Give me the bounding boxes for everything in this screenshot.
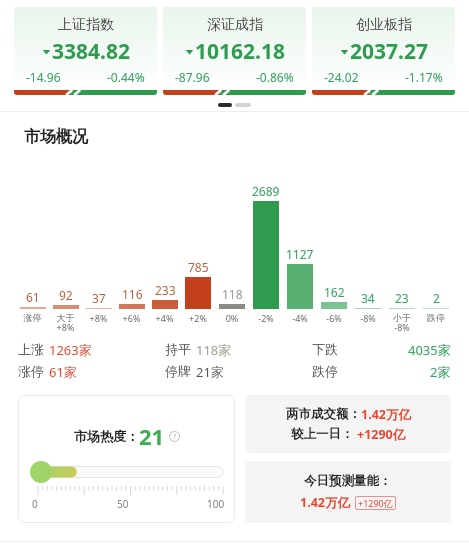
staticText: 21: [139, 421, 165, 451]
staticText: 停牌: [165, 363, 191, 379]
staticText: 2: [433, 290, 440, 306]
staticText: -87.96: [175, 69, 210, 85]
staticText: 1127: [286, 246, 314, 262]
staticText: 118家: [196, 341, 232, 359]
staticText: 市场热度：: [74, 428, 139, 444]
staticText: 2家: [430, 363, 451, 381]
staticText: 下跌: [312, 341, 338, 357]
staticText: 23: [395, 290, 409, 306]
button[interactable]: 深证成指: [163, 7, 306, 95]
staticText: -14.96: [26, 69, 61, 85]
staticText: 50: [117, 497, 129, 511]
staticText: -1.17%: [405, 69, 443, 85]
staticText: ?: [173, 432, 177, 442]
staticText: 1.42万亿: [300, 494, 350, 511]
staticText: 2037.27: [350, 37, 428, 66]
staticText: 涨停: [18, 363, 44, 379]
staticText: 大于 +8%: [49, 312, 82, 333]
staticText: -0.44%: [107, 69, 145, 85]
button[interactable]: 市场热度：: [18, 395, 235, 523]
staticText: +8%: [82, 312, 115, 324]
staticText: 61: [26, 289, 40, 305]
staticText: 上证指数: [58, 16, 114, 34]
staticText: 3384.82: [52, 37, 130, 66]
staticText: 涨停: [16, 312, 49, 323]
button[interactable]: 上证指数: [14, 7, 157, 95]
staticText: -2%: [249, 312, 283, 324]
button[interactable]: 帮助: [169, 431, 180, 442]
button[interactable]: 两市成交额：: [245, 395, 451, 453]
staticText: 市场概况: [24, 127, 88, 147]
staticText: -8%: [351, 312, 385, 324]
staticText: 37: [92, 290, 106, 306]
staticText: +1290亿: [357, 426, 406, 443]
staticText: -4%: [283, 312, 317, 324]
staticText: 小于 -8%: [385, 312, 419, 333]
staticText: 4035家: [408, 341, 451, 359]
staticText: 持平: [165, 341, 191, 357]
staticText: 今日预测量能：: [304, 473, 392, 489]
staticText: 深证成指: [207, 16, 263, 34]
staticText: 0%: [215, 312, 249, 324]
staticText: 较上一日：: [291, 426, 354, 442]
staticText: 跌停: [312, 363, 338, 379]
staticText: 上涨: [18, 341, 44, 357]
staticText: 100: [207, 497, 225, 511]
staticText: +2%: [181, 312, 215, 324]
staticText: 2689: [252, 183, 280, 199]
staticText: +1290亿: [358, 497, 393, 509]
button[interactable]: 今日预测量能：: [245, 461, 451, 523]
staticText: 21家: [196, 363, 224, 381]
staticText: 创业板指: [356, 16, 412, 34]
staticText: 10162.18: [195, 37, 285, 66]
staticText: 118: [222, 286, 243, 302]
button[interactable]: 创业板指: [312, 7, 455, 95]
staticText: -6%: [317, 312, 351, 324]
staticText: +4%: [148, 312, 181, 324]
staticText: 162: [324, 284, 345, 300]
staticText: 785: [188, 259, 209, 275]
staticText: -24.02: [324, 69, 359, 85]
staticText: 0: [32, 497, 38, 511]
staticText: 跌停: [419, 312, 453, 323]
staticText: 1.42万亿: [361, 406, 411, 423]
staticText: +6%: [115, 312, 148, 324]
staticText: 34: [361, 290, 375, 306]
staticText: -0.86%: [256, 69, 294, 85]
staticText: 233: [155, 282, 176, 298]
staticText: 61家: [49, 363, 77, 381]
staticText: 两市成交额：: [286, 406, 361, 422]
staticText: 116: [122, 286, 143, 302]
staticText: 92: [59, 287, 73, 303]
staticText: 1263家: [49, 341, 92, 359]
